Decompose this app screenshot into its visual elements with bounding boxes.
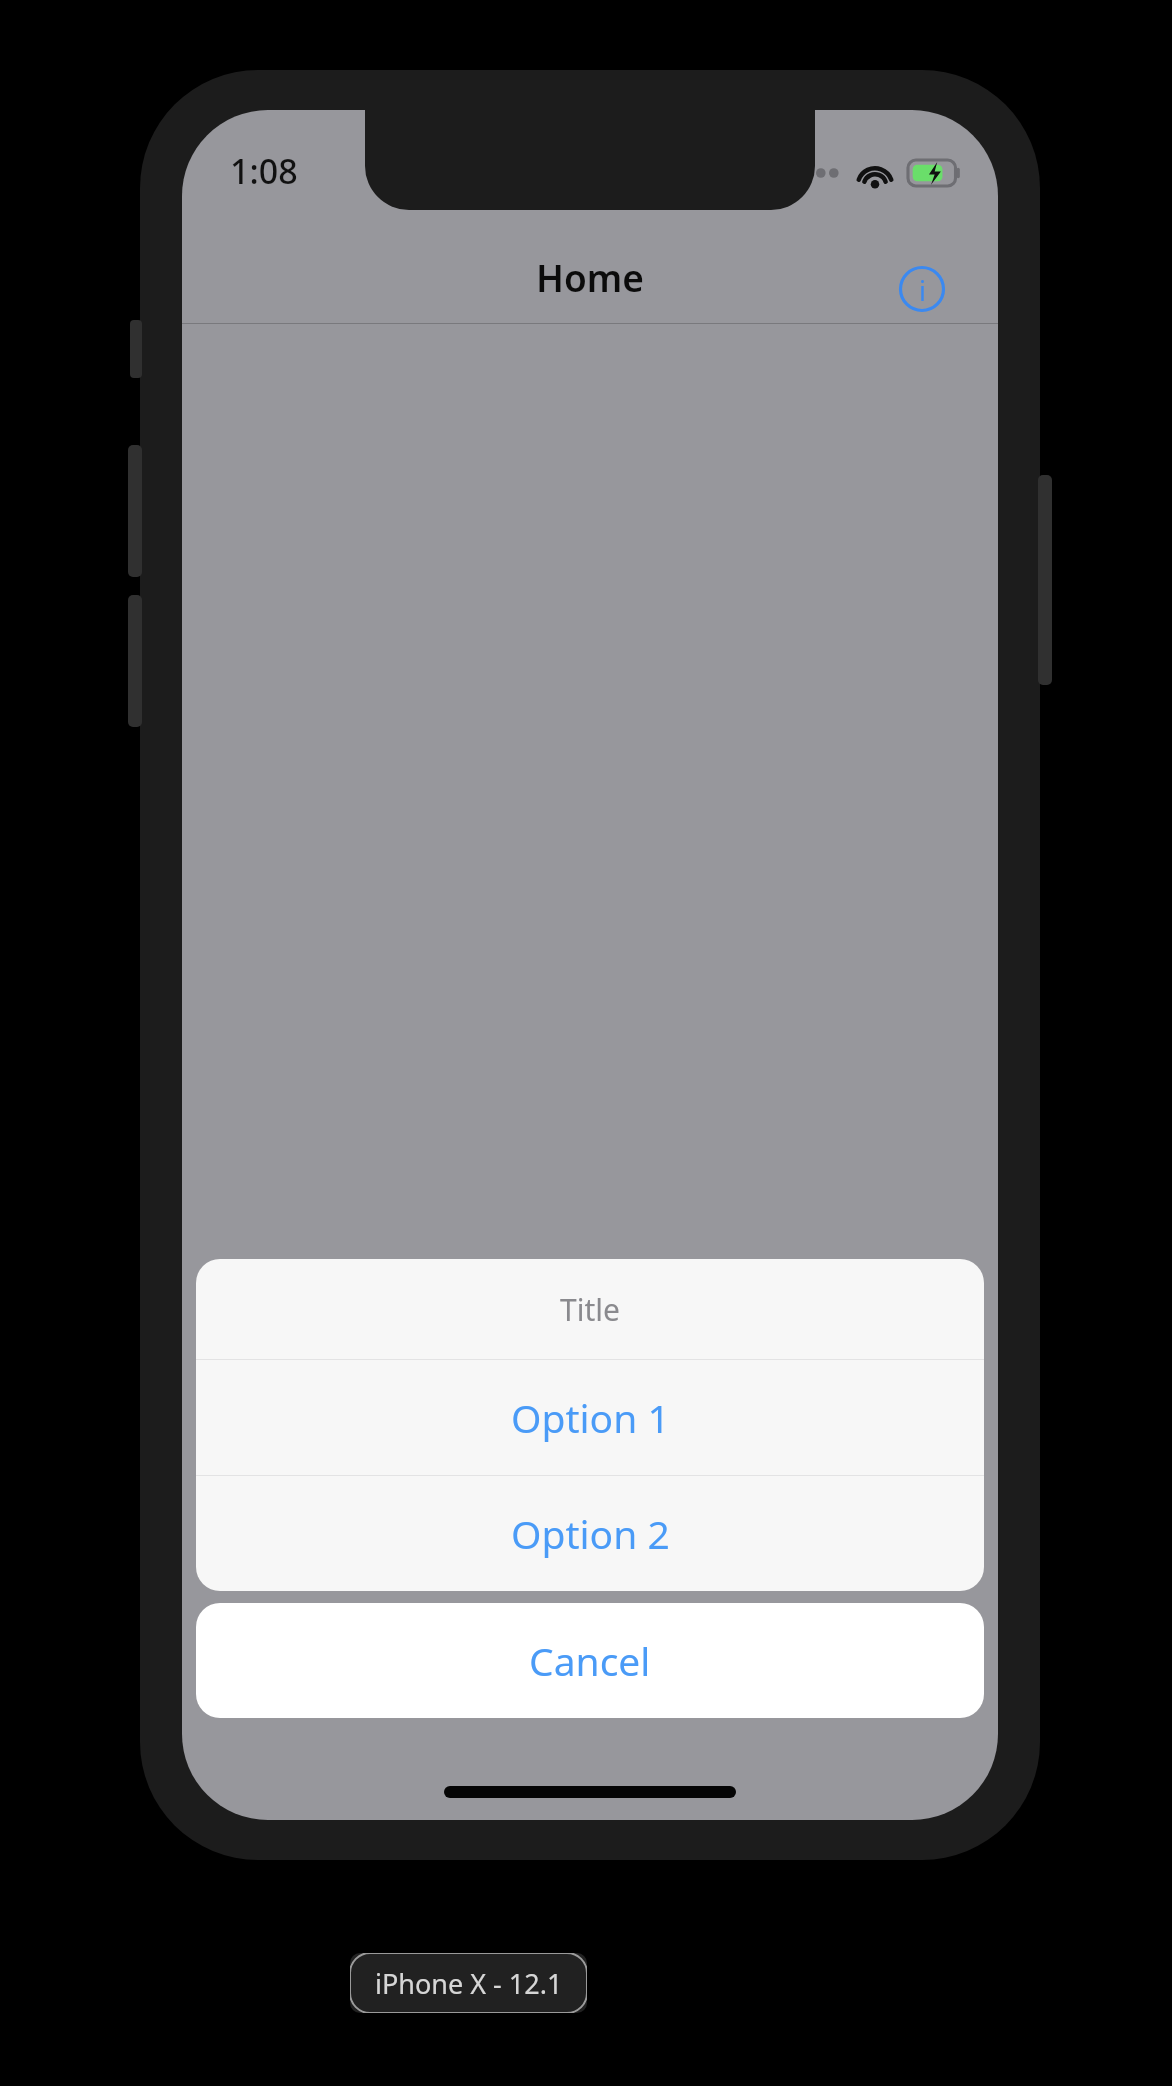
staticText: iPhone X - 12.1 bbox=[375, 1965, 563, 2002]
staticText: Option 1 bbox=[511, 1391, 670, 1444]
staticText: Cancel bbox=[529, 1634, 651, 1687]
button[interactable]: Info bbox=[894, 261, 950, 317]
staticText: Home bbox=[536, 252, 644, 302]
staticText: 1:08 bbox=[230, 148, 298, 194]
staticText: i bbox=[919, 272, 926, 309]
button[interactable]: Home bbox=[182, 1658, 454, 1728]
button[interactable]: User bbox=[454, 1658, 726, 1728]
button[interactable]: Settings bbox=[726, 1658, 998, 1728]
button[interactable]: Option 2 bbox=[196, 1476, 984, 1591]
staticText: Option 2 bbox=[511, 1507, 670, 1560]
button[interactable]: Option 1 bbox=[196, 1360, 984, 1475]
staticText: Title bbox=[560, 1289, 620, 1330]
button[interactable]: Cancel bbox=[196, 1603, 984, 1718]
